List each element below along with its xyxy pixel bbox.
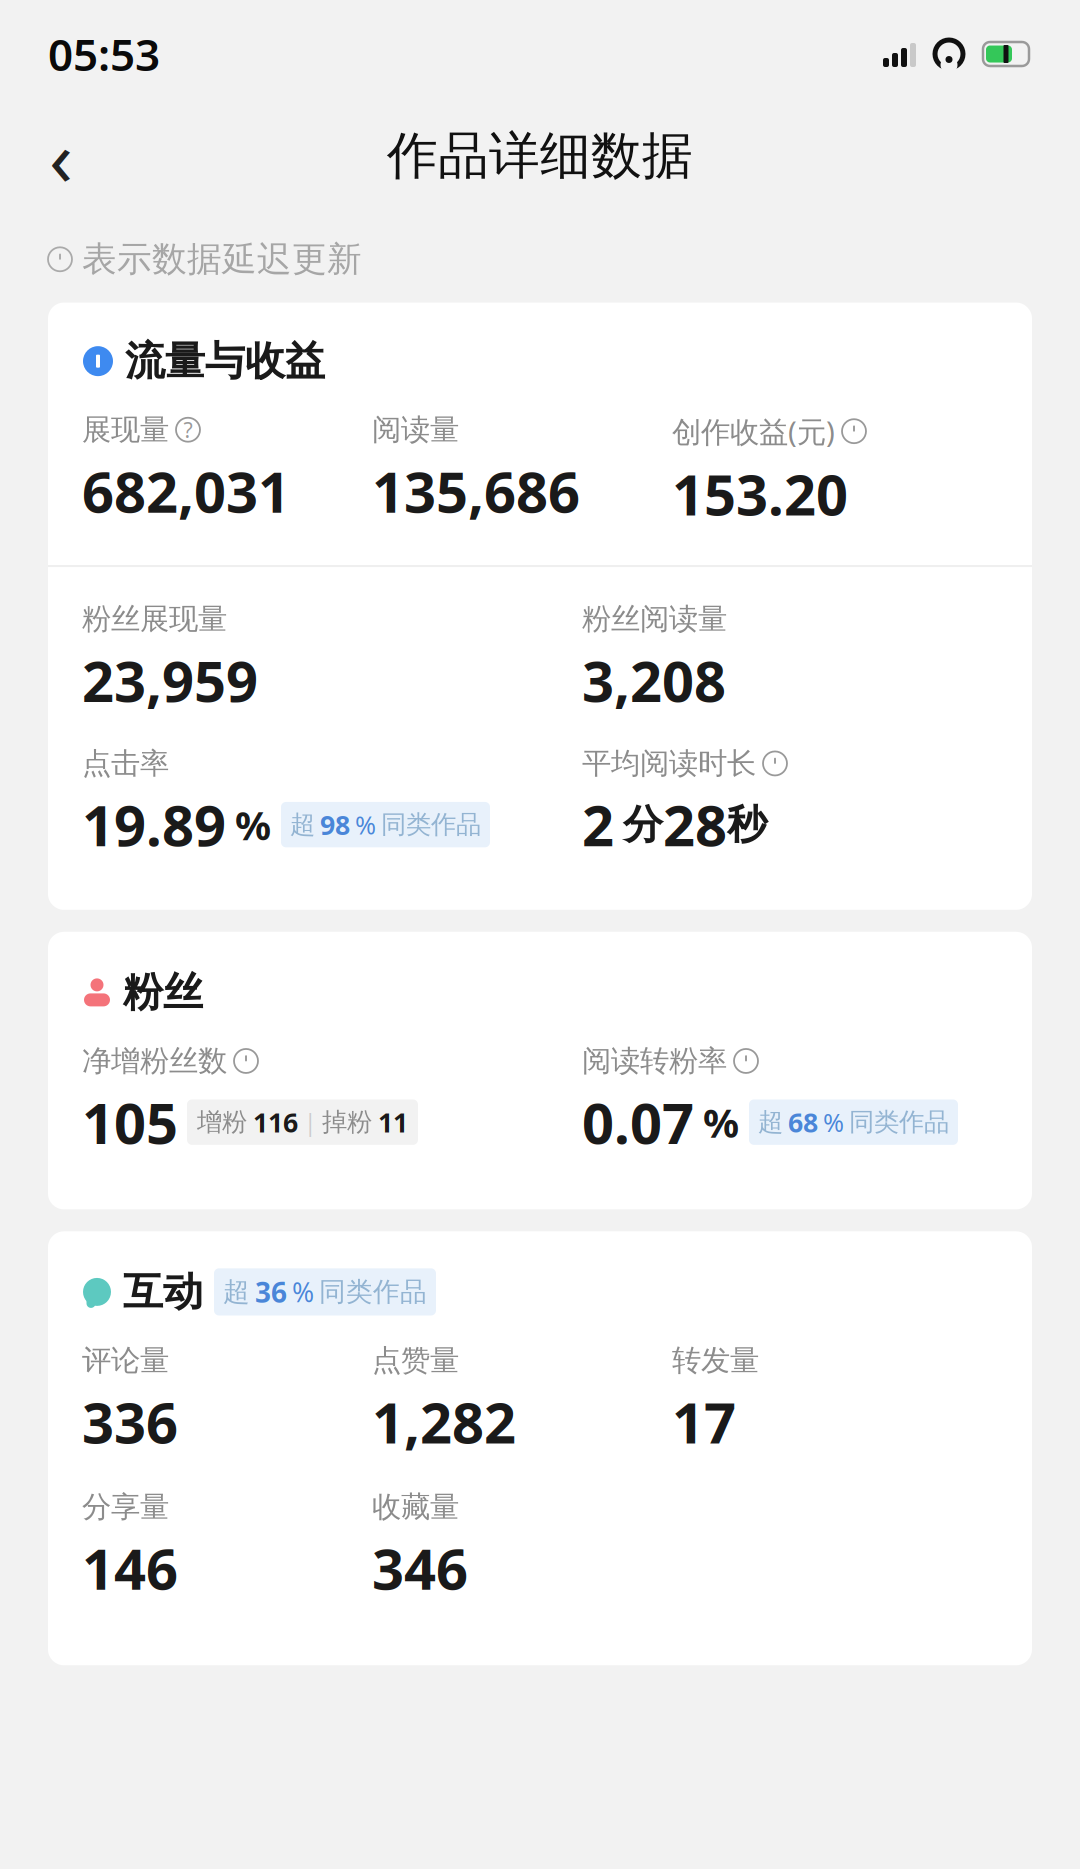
staticText: 展现量 bbox=[82, 412, 169, 448]
staticText: 682,031 bbox=[82, 454, 290, 528]
staticText: 平均阅读时长 bbox=[582, 745, 756, 781]
staticText: 秒 bbox=[727, 800, 767, 849]
staticText: 1,282 bbox=[372, 1384, 516, 1459]
staticText: 增粉 bbox=[197, 1107, 247, 1138]
staticText: 336 bbox=[82, 1384, 178, 1459]
staticText: 105 bbox=[82, 1085, 178, 1159]
staticText: 0.07 bbox=[582, 1085, 694, 1159]
staticText: 146 bbox=[82, 1531, 178, 1605]
staticText: 135,686 bbox=[372, 454, 580, 528]
staticText: 掉粉 bbox=[322, 1107, 372, 1138]
staticText: % bbox=[292, 1274, 314, 1310]
staticText: 3,208 bbox=[582, 643, 726, 717]
staticText: 点击率 bbox=[82, 745, 169, 781]
staticText: 超 bbox=[223, 1275, 250, 1308]
staticText: 点赞量 bbox=[372, 1342, 459, 1378]
staticText: % bbox=[823, 1105, 844, 1139]
staticText: 36 bbox=[255, 1273, 287, 1310]
staticText: % bbox=[355, 808, 376, 841]
staticText: | bbox=[304, 1107, 316, 1137]
staticText: 作品详细数据 bbox=[387, 125, 693, 187]
staticText: % bbox=[703, 1096, 739, 1149]
staticText: 分享量 bbox=[82, 1489, 169, 1525]
staticText: 粉丝 bbox=[123, 968, 203, 1017]
staticText: ? bbox=[183, 416, 192, 444]
staticText: 11 bbox=[378, 1104, 408, 1140]
staticText: 粉丝展现量 bbox=[82, 601, 227, 637]
staticText: 评论量 bbox=[82, 1342, 169, 1378]
staticText: 分 bbox=[623, 800, 663, 849]
staticText: 同类作品 bbox=[849, 1107, 949, 1138]
staticText: 超 bbox=[758, 1107, 783, 1138]
staticText: 28 bbox=[663, 787, 727, 862]
staticText: 2 bbox=[582, 787, 614, 862]
staticText: 超 bbox=[290, 809, 315, 840]
staticText: 收藏量 bbox=[372, 1489, 459, 1525]
staticText: 流量与收益 bbox=[125, 337, 325, 386]
staticText: 05:53 bbox=[48, 25, 160, 83]
staticText: 153.20 bbox=[672, 457, 848, 531]
staticText: 23,959 bbox=[82, 643, 258, 717]
staticText: 粉丝阅读量 bbox=[582, 601, 727, 637]
staticText: 17 bbox=[672, 1384, 736, 1459]
staticText: % bbox=[235, 798, 271, 851]
staticText: ‹ bbox=[49, 105, 73, 207]
staticText: 阅读量 bbox=[372, 412, 459, 448]
staticText: 同类作品 bbox=[381, 809, 481, 840]
staticText: 净增粉丝数 bbox=[82, 1043, 227, 1079]
staticText: 表示数据延迟更新 bbox=[82, 238, 362, 281]
staticText: 68 bbox=[788, 1104, 818, 1140]
staticText: 346 bbox=[372, 1531, 468, 1605]
staticText: 98 bbox=[320, 807, 350, 842]
button[interactable]: Back bbox=[26, 121, 96, 191]
staticText: 同类作品 bbox=[319, 1275, 427, 1308]
staticText: 116 bbox=[253, 1104, 298, 1140]
staticText: 互动 bbox=[123, 1267, 203, 1316]
staticText: 转发量 bbox=[672, 1342, 759, 1378]
staticText: 创作收益(元) bbox=[672, 412, 835, 451]
staticText: 19.89 bbox=[82, 787, 226, 862]
staticText: 阅读转粉率 bbox=[582, 1043, 727, 1079]
